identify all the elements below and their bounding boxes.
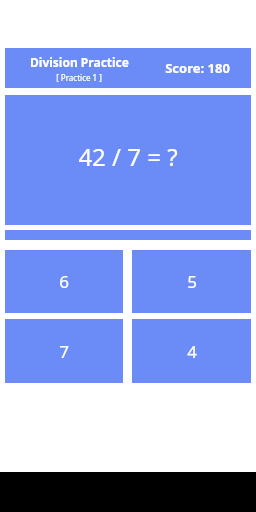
button[interactable]: Division Practice	[5, 48, 251, 88]
button[interactable]: 5	[132, 250, 251, 313]
staticText: 4	[187, 340, 197, 363]
staticText: 7	[59, 340, 69, 363]
button[interactable]: 6	[5, 250, 123, 313]
button[interactable]: 42 / 7 = ?	[5, 95, 251, 225]
button[interactable]: 4	[132, 319, 251, 383]
button[interactable]: 7	[5, 319, 123, 383]
staticText: Division Practice	[30, 54, 129, 70]
staticText: [ Practice 1 ]	[56, 72, 102, 83]
staticText: Score: 180	[165, 59, 230, 77]
staticText: 42 / 7 = ?	[78, 140, 178, 173]
staticText: 6	[59, 270, 69, 293]
staticText: 5	[187, 270, 197, 293]
